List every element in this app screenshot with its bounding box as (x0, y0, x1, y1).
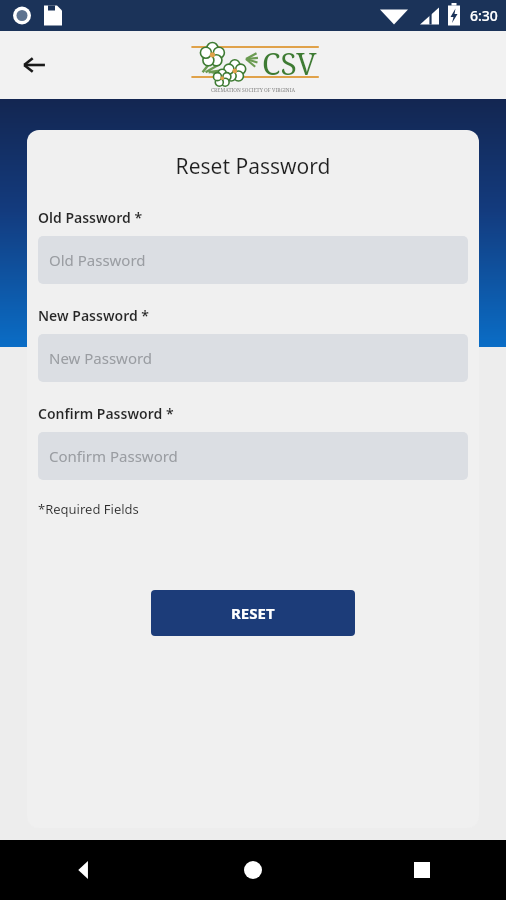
staticText: CSV (262, 43, 317, 84)
button[interactable]: Recent apps (337, 840, 506, 900)
staticText: 6:30 (470, 6, 498, 25)
staticText: New Password * (38, 306, 149, 325)
staticText: Old Password (49, 250, 146, 270)
staticText: *Required Fields (38, 500, 139, 518)
button[interactable]: Old Password (38, 236, 468, 284)
button[interactable]: Back (0, 840, 168, 900)
button[interactable]: Confirm Password (38, 432, 468, 480)
button[interactable]: Back (12, 43, 56, 87)
staticText: RESET (231, 603, 275, 623)
staticText: Confirm Password * (38, 404, 174, 423)
staticText: CREMATION SOCIETY OF VIRGINIA (211, 87, 295, 94)
staticText: Old Password * (38, 208, 143, 227)
staticText: New Password (49, 348, 153, 368)
staticText: Reset Password (38, 152, 468, 181)
button[interactable]: RESET (151, 590, 355, 636)
button[interactable]: New Password (38, 334, 468, 382)
staticText: Confirm Password (49, 446, 178, 466)
button[interactable]: Home (168, 840, 337, 900)
